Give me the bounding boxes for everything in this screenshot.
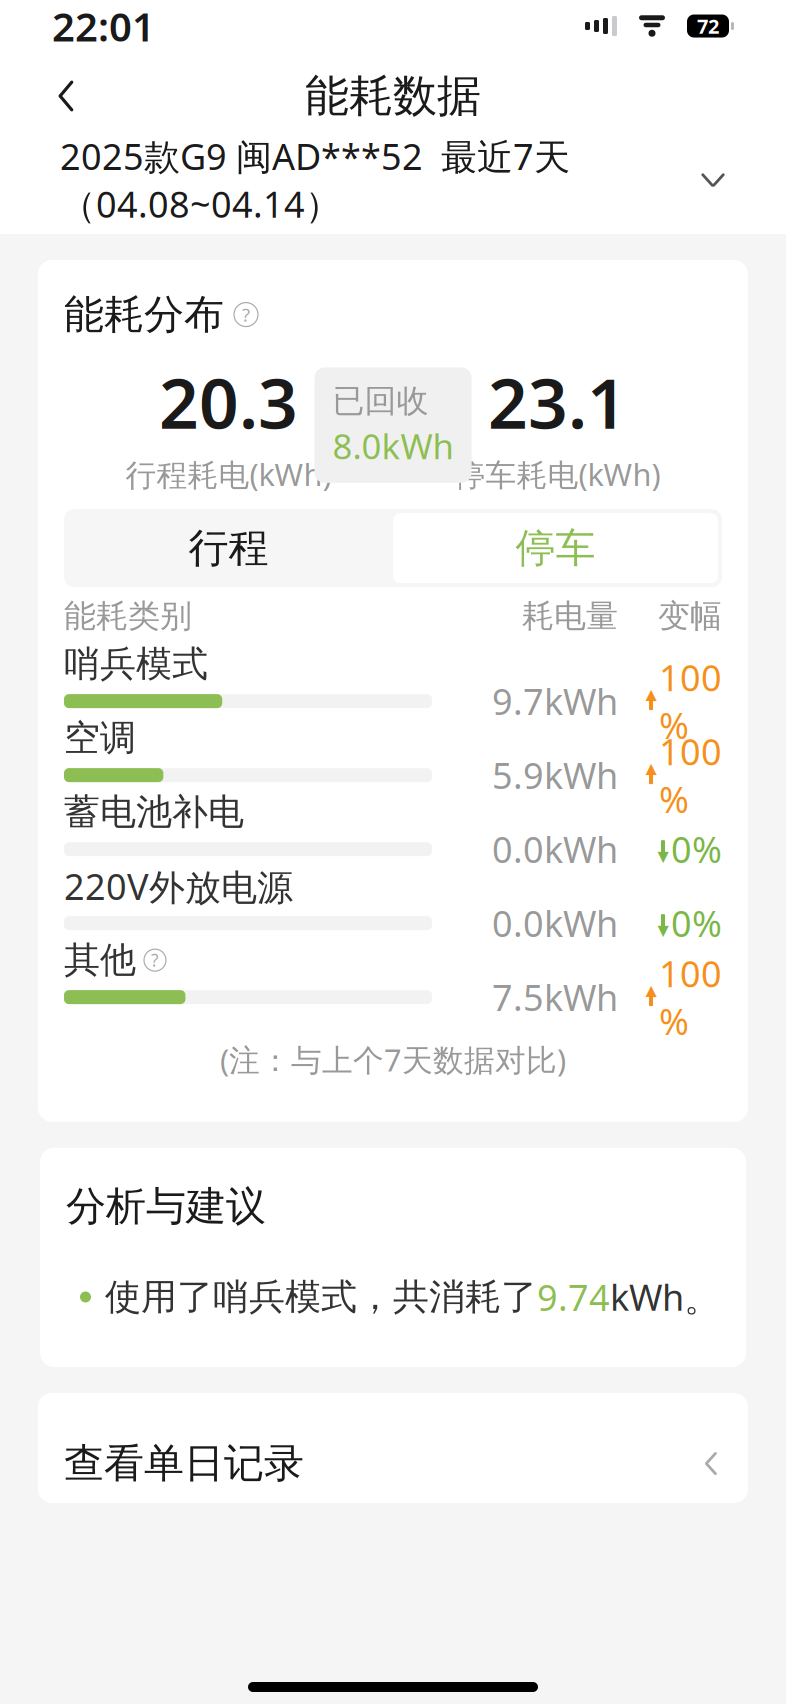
staticText: 停车耗电(kWh) <box>454 454 660 494</box>
staticText: 行程耗电(kWh) <box>125 454 331 494</box>
staticText: ▲ <box>645 686 656 702</box>
staticText: 5.9kWh <box>492 751 618 799</box>
staticText: 行程 <box>188 524 268 573</box>
staticText: 能耗类别 <box>64 596 192 636</box>
staticText: ▼ <box>657 848 668 864</box>
staticText: 0% <box>671 825 722 873</box>
button[interactable]: 查看单日记录 <box>38 1393 748 1503</box>
staticText: 分析与建议 <box>66 1182 266 1231</box>
staticText: 耗电量 <box>522 596 618 636</box>
staticText: (注：与上个7天数据对比) <box>220 1039 566 1080</box>
staticText: 0.0kWh <box>492 825 618 873</box>
staticText: 查看单日记录 <box>64 1439 304 1488</box>
staticText: 7.5kWh <box>492 973 618 1021</box>
staticText: 使用了哨兵模式，共消耗了 <box>105 1275 537 1319</box>
staticText: 100% <box>659 727 722 823</box>
staticText: ? <box>242 302 250 327</box>
staticText: 能耗数据 <box>305 69 481 123</box>
staticText: kWh。 <box>610 1273 720 1321</box>
staticText: 9.7kWh <box>492 677 618 725</box>
staticText: 20.3 <box>159 356 298 448</box>
staticText: 100% <box>659 653 722 749</box>
staticText: ▲ <box>645 760 656 776</box>
staticText: 100% <box>659 949 722 1045</box>
staticText: 其他 <box>64 938 136 982</box>
staticText: 220V外放电源 <box>64 862 293 910</box>
staticText: 蓄电池补电 <box>64 790 244 834</box>
staticText: 72 <box>697 13 719 39</box>
staticText: 0% <box>671 899 722 947</box>
staticText: 22:01 <box>52 0 155 52</box>
staticText: 9.74 <box>537 1273 610 1321</box>
staticText: ? <box>151 949 159 972</box>
staticText: 能耗分布 <box>64 290 224 339</box>
staticText: 2025款G9 闽AD***52 最近7天（04.08~04.14） <box>60 132 570 228</box>
staticText: 23.1 <box>488 356 627 448</box>
staticText: 8.0kWh <box>332 423 453 469</box>
staticText: 空调 <box>64 716 136 760</box>
button[interactable]: 停车 <box>393 513 722 583</box>
staticText: ▲ <box>645 982 656 998</box>
staticText: ▼ <box>657 922 668 938</box>
staticText: 哨兵模式 <box>64 642 208 686</box>
staticText: 变幅 <box>658 596 722 636</box>
staticText: 0.0kWh <box>492 899 618 947</box>
staticText: 停车 <box>515 524 595 573</box>
staticText: 已回收 <box>332 381 428 421</box>
button[interactable]: 行程 <box>64 509 393 587</box>
button[interactable]: 返回 <box>38 68 94 124</box>
button[interactable]: 2025款G9 闽AD***52 最近7天（04.08~04.14） <box>0 140 786 220</box>
